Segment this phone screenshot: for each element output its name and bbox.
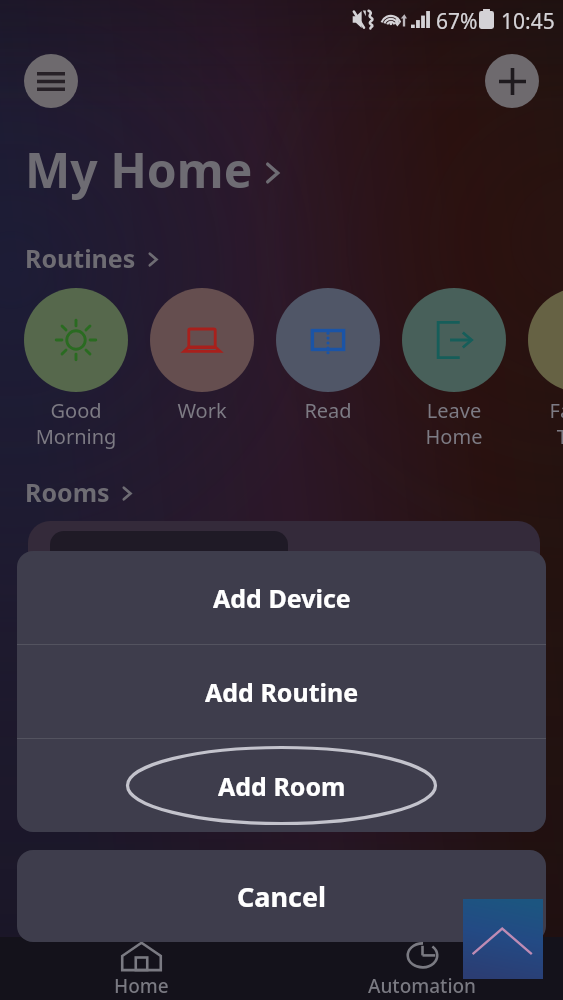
button[interactable]: Routines xyxy=(25,241,158,275)
button[interactable]: Automation xyxy=(352,941,492,1000)
button[interactable] xyxy=(28,521,540,641)
staticText: Good Morning xyxy=(4,397,148,449)
staticText: 10:45 xyxy=(501,7,555,36)
button[interactable]: Add Room xyxy=(17,739,546,832)
staticText: Work xyxy=(130,397,274,424)
staticText: Add Routine xyxy=(205,675,359,709)
staticText: Cancel xyxy=(237,878,327,915)
staticText: My Home xyxy=(25,137,253,202)
button[interactable] xyxy=(150,288,254,392)
button[interactable]: Add Device xyxy=(17,551,546,644)
staticText: Read xyxy=(256,397,400,424)
button[interactable] xyxy=(24,288,128,392)
staticText: Rooms xyxy=(25,475,110,509)
button[interactable]: Add Routine xyxy=(17,645,546,738)
button[interactable]: Add xyxy=(485,54,539,108)
staticText: Add Room xyxy=(218,769,346,803)
button[interactable]: My Home xyxy=(25,137,280,202)
staticText: Leave Home xyxy=(382,397,526,449)
button[interactable]: Home xyxy=(71,941,211,1000)
button[interactable] xyxy=(402,288,506,392)
button[interactable]: Menu xyxy=(24,54,78,108)
staticText: Automation xyxy=(368,973,477,999)
staticText: Routines xyxy=(25,241,136,275)
button[interactable]: Cancel xyxy=(17,850,546,942)
button[interactable] xyxy=(276,288,380,392)
staticText: 67% xyxy=(436,7,478,36)
button[interactable]: Expand xyxy=(463,899,543,979)
staticText: Home xyxy=(114,973,169,999)
staticText: Add Device xyxy=(213,581,351,615)
staticText: Family Time xyxy=(508,397,563,449)
button[interactable] xyxy=(528,288,563,392)
button[interactable]: Rooms xyxy=(25,475,132,509)
